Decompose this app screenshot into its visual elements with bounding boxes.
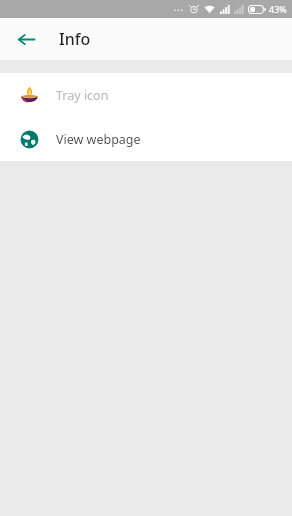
staticText: View webpage	[56, 131, 141, 148]
staticText: Tray icon	[56, 87, 109, 104]
staticText: Info	[59, 28, 91, 50]
button[interactable]: Tray icon	[0, 73, 292, 117]
staticText: 43%	[269, 3, 287, 15]
other: Tray icon	[19, 85, 40, 106]
other: View webpage	[19, 129, 40, 150]
button[interactable]: View webpage	[0, 117, 292, 161]
button[interactable]: Back	[10, 23, 42, 55]
